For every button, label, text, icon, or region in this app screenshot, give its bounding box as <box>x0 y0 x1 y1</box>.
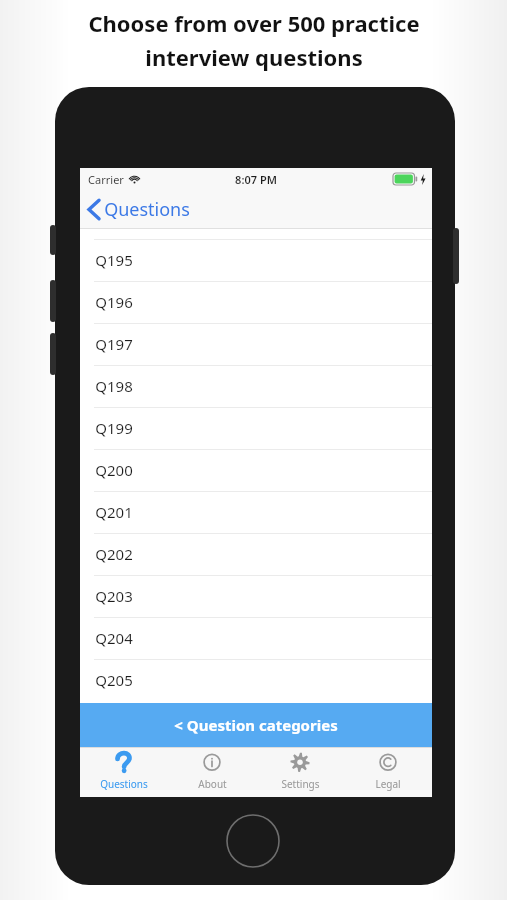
button[interactable]: Q202 <box>80 533 432 575</box>
staticText: Q205 <box>95 670 133 690</box>
staticText: Carrier <box>88 172 124 187</box>
button[interactable]: Q196 <box>80 281 432 323</box>
staticText: 8:07 PM <box>235 172 277 187</box>
button[interactable]: Q203 <box>80 575 432 617</box>
button[interactable]: Q204 <box>80 617 432 659</box>
button[interactable]: Settings <box>256 747 344 797</box>
staticText: Q203 <box>95 586 133 606</box>
staticText: Q201 <box>95 502 133 522</box>
staticText: interview questions <box>145 42 363 72</box>
button[interactable]: Q200 <box>80 449 432 491</box>
button[interactable]: Legal <box>344 747 432 797</box>
staticText: Q195 <box>95 250 133 270</box>
button[interactable]: Q198 <box>80 365 432 407</box>
staticText: Q202 <box>95 544 133 564</box>
button[interactable]: Q205 <box>80 659 432 701</box>
button[interactable]: Q201 <box>80 491 432 533</box>
button[interactable]: Questions <box>80 747 168 797</box>
other: Questions <box>112 751 136 775</box>
staticText: Q204 <box>95 628 133 648</box>
staticText: Q198 <box>95 376 133 396</box>
staticText: Questions <box>100 777 148 791</box>
button[interactable]: Q197 <box>80 323 432 365</box>
staticText: Q200 <box>95 460 133 480</box>
staticText: Settings <box>281 777 320 791</box>
staticText: Q196 <box>95 292 133 312</box>
button[interactable]: Questions <box>80 190 202 229</box>
staticText: Legal <box>375 777 401 791</box>
button[interactable]: About <box>168 747 256 797</box>
button[interactable]: Q195 <box>80 239 432 281</box>
staticText: < Question categories <box>174 715 338 735</box>
staticText: Q197 <box>95 334 133 354</box>
button[interactable]: Q199 <box>80 407 432 449</box>
staticText: About <box>198 777 227 791</box>
staticText: Choose from over 500 practice <box>88 8 420 38</box>
staticText: Q199 <box>95 418 133 438</box>
other: Settings <box>288 751 312 775</box>
other: Legal <box>376 751 400 775</box>
staticText: Questions <box>104 197 190 222</box>
button[interactable]: < Question categories <box>80 703 432 747</box>
other: About <box>200 751 224 775</box>
